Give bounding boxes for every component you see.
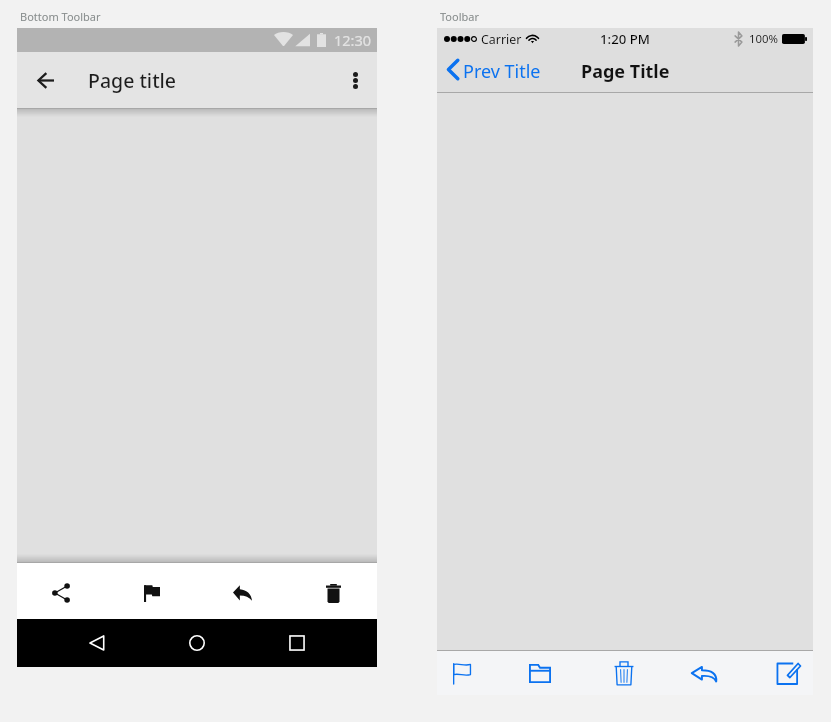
button[interactable]: Recents — [279, 619, 315, 667]
button[interactable]: Home — [179, 619, 215, 667]
staticText: 1:20 PM — [600, 30, 650, 48]
staticText: Toolbar — [440, 9, 479, 24]
staticText: Page Title — [581, 59, 670, 84]
button[interactable]: Delete — [602, 651, 646, 695]
staticText: 100% — [749, 31, 779, 47]
button[interactable]: Reply — [218, 569, 266, 617]
button[interactable]: Compose — [766, 651, 810, 695]
button[interactable]: Back — [21, 56, 69, 104]
button[interactable]: Share — [37, 569, 85, 617]
staticText: 12:30 — [334, 30, 372, 50]
staticText: Carrier — [481, 31, 522, 48]
button[interactable]: Flag — [128, 569, 176, 617]
staticText: Bottom Toolbar — [20, 9, 101, 24]
button[interactable]: Folder — [518, 651, 562, 695]
button[interactable]: Back — [79, 619, 115, 667]
button[interactable]: Delete — [309, 569, 357, 617]
button[interactable]: Prev Title — [447, 59, 541, 84]
button[interactable]: More options — [331, 56, 379, 104]
button[interactable]: Flag — [440, 651, 484, 695]
staticText: Prev Title — [463, 59, 541, 84]
button[interactable]: Reply — [682, 651, 726, 695]
staticText: Page title — [88, 67, 177, 94]
